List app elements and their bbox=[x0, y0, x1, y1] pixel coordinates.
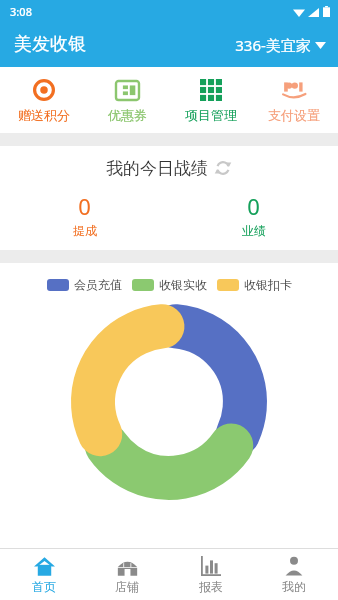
staticText: 3:08 bbox=[10, 4, 32, 19]
button[interactable]: 支付设置 bbox=[254, 73, 334, 127]
staticText: 会员充值 bbox=[74, 277, 122, 292]
staticText: 报表 bbox=[199, 579, 223, 594]
staticText: 店铺 bbox=[115, 579, 139, 594]
staticText: 336-美宜家 bbox=[235, 35, 311, 55]
staticText: 赠送积分 bbox=[18, 107, 70, 123]
staticText: 提成 bbox=[73, 223, 97, 238]
button[interactable]: 店铺 bbox=[87, 551, 167, 598]
button[interactable]: 0 bbox=[0, 191, 169, 238]
button[interactable]: 0 bbox=[169, 191, 338, 238]
staticText: 业绩 bbox=[242, 223, 266, 238]
staticText: 支付设置 bbox=[268, 107, 320, 123]
button[interactable]: 我的 bbox=[254, 551, 334, 598]
staticText: 美发收银 bbox=[14, 33, 86, 56]
staticText: 收银实收 bbox=[159, 277, 207, 292]
button[interactable]: 336-美宜家 bbox=[223, 29, 338, 61]
staticText: 我的 bbox=[282, 579, 306, 594]
button[interactable]: 首页 bbox=[4, 551, 84, 598]
staticText: 0 bbox=[247, 191, 260, 221]
button[interactable]: 项目管理 bbox=[171, 73, 251, 127]
button[interactable]: Refresh bbox=[215, 160, 232, 177]
staticText: 0 bbox=[78, 191, 91, 221]
button[interactable]: 优惠券 bbox=[87, 73, 167, 127]
button[interactable]: 赠送积分 bbox=[4, 73, 84, 127]
staticText: 首页 bbox=[32, 579, 56, 594]
staticText: 优惠券 bbox=[108, 107, 147, 123]
staticText: 项目管理 bbox=[185, 107, 237, 123]
staticText: 我的今日战绩 bbox=[106, 158, 208, 179]
button[interactable]: 报表 bbox=[171, 551, 251, 598]
staticText: 收银扣卡 bbox=[244, 277, 292, 292]
